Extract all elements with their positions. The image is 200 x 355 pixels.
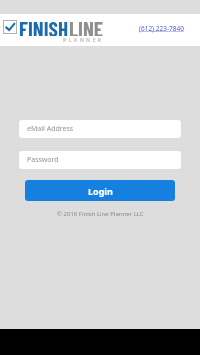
staticText: Password (27, 155, 59, 165)
staticText: P L A N N E R (63, 36, 102, 43)
staticText: © 2016 Finish Line Planner LLC (57, 210, 144, 218)
staticText: FINISH (19, 16, 69, 36)
staticText: eMail Address (27, 124, 74, 134)
other: Finish Line Planner (3, 20, 17, 34)
staticText: Login (88, 185, 113, 197)
button[interactable]: eMail Address (19, 120, 181, 138)
button[interactable]: Password (19, 151, 181, 169)
staticText: LINE (69, 16, 104, 36)
staticText: (612) 223-7840 (139, 24, 184, 33)
button[interactable]: Login (25, 180, 175, 201)
button[interactable]: (612) 223-7840 (139, 24, 184, 33)
